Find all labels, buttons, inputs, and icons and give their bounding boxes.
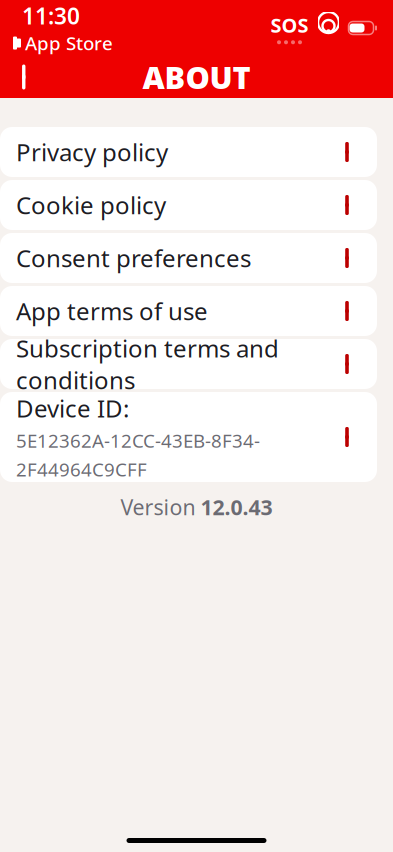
staticText: 5E12362A-12CC-43EB-8F34- xyxy=(16,428,260,453)
staticText: ABOUT xyxy=(142,57,250,97)
button[interactable]: Consent preferences xyxy=(0,233,377,283)
staticText: Consent preferences xyxy=(16,242,251,274)
staticText: 12.0.43 xyxy=(200,493,272,521)
staticText: SOS xyxy=(270,12,308,38)
button[interactable]: Privacy policy xyxy=(0,127,377,177)
staticText: 11:30 xyxy=(22,1,80,31)
staticText: Cookie policy xyxy=(16,189,166,221)
button[interactable]: Subscription terms and conditions xyxy=(0,339,377,389)
staticText: Version xyxy=(120,493,195,521)
staticText: App Store xyxy=(25,31,113,55)
button[interactable]: App terms of use xyxy=(0,286,377,336)
staticText: 2F44964C9CFF xyxy=(16,457,147,482)
staticText: Device ID: xyxy=(16,392,129,424)
staticText: Privacy policy xyxy=(16,136,168,168)
staticText: Subscription terms and conditions xyxy=(16,332,279,396)
button[interactable]: Cookie policy xyxy=(0,180,377,230)
staticText: App terms of use xyxy=(16,295,208,327)
button[interactable]: Back xyxy=(0,54,48,100)
button[interactable]: Device ID: xyxy=(0,392,377,482)
